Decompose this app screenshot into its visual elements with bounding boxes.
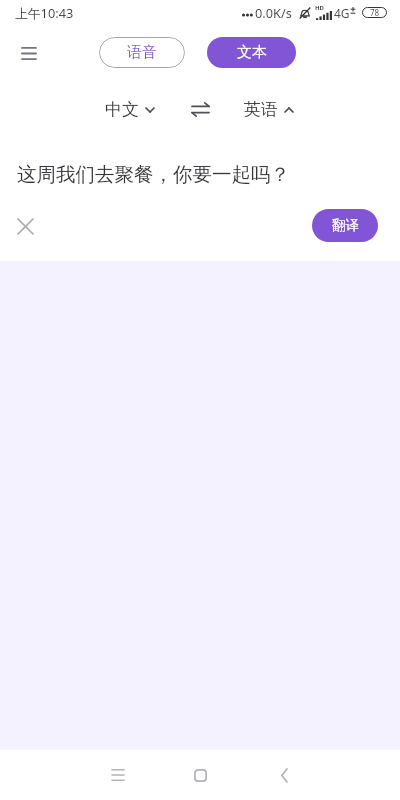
- button[interactable]: Home: [180, 755, 220, 795]
- button[interactable]: Back: [264, 755, 304, 795]
- button[interactable]: 翻译: [312, 209, 378, 242]
- button[interactable]: Recents: [98, 755, 138, 795]
- staticText: 文本: [237, 43, 267, 62]
- staticText: 这周我们去聚餐，你要一起吗？: [17, 162, 290, 187]
- button[interactable]: 文本: [207, 37, 296, 68]
- staticText: 翻译: [332, 217, 359, 234]
- staticText: 78: [370, 7, 380, 18]
- button[interactable]: 英语: [238, 93, 299, 126]
- button[interactable]: Menu: [13, 37, 45, 69]
- staticText: 上午10:43: [15, 4, 74, 21]
- button[interactable]: Clear: [8, 209, 42, 243]
- staticText: 中文: [105, 99, 139, 120]
- button[interactable]: 语音: [99, 37, 185, 68]
- button[interactable]: 中文: [99, 93, 160, 126]
- staticText: 英语: [244, 99, 278, 120]
- button[interactable]: Swap languages: [188, 97, 212, 121]
- staticText: HD: [315, 4, 324, 12]
- staticText: 4G: [334, 5, 350, 21]
- button[interactable]: 这周我们去聚餐，你要一起吗？: [8, 149, 392, 199]
- staticText: 0.0K/s: [255, 4, 292, 21]
- staticText: 语音: [127, 43, 157, 62]
